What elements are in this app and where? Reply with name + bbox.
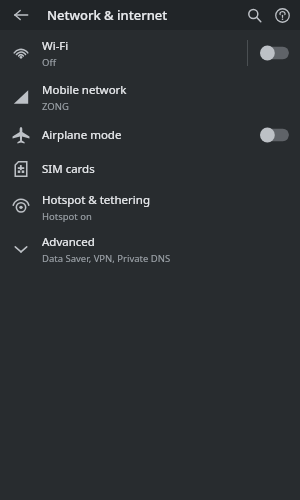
button[interactable]: Toggle: [259, 43, 289, 63]
staticText: Data Saver, VPN, Private DNS: [42, 252, 171, 265]
button[interactable]: Help: [268, 1, 296, 29]
button[interactable]: SIM cards: [0, 152, 300, 186]
button[interactable]: Wi-Fi: [0, 30, 300, 76]
staticText: Mobile network: [42, 82, 127, 98]
staticText: Advanced: [42, 234, 95, 250]
staticText: Hotspot & tethering: [42, 192, 150, 208]
button[interactable]: Toggle: [259, 125, 289, 145]
staticText: ZONG: [42, 100, 69, 113]
staticText: Network & internet: [47, 6, 168, 24]
button[interactable]: Mobile network: [0, 76, 300, 118]
staticText: Off: [42, 56, 56, 69]
button[interactable]: Back: [8, 2, 34, 28]
button[interactable]: Advanced: [0, 228, 300, 270]
button[interactable]: Hotspot & tethering: [0, 186, 300, 228]
staticText: Airplane mode: [42, 127, 122, 143]
button[interactable]: Airplane mode: [0, 118, 300, 152]
button[interactable]: Search: [240, 1, 268, 29]
staticText: Wi-Fi: [42, 38, 69, 54]
staticText: Hotspot on: [42, 210, 92, 223]
staticText: SIM cards: [42, 161, 95, 177]
